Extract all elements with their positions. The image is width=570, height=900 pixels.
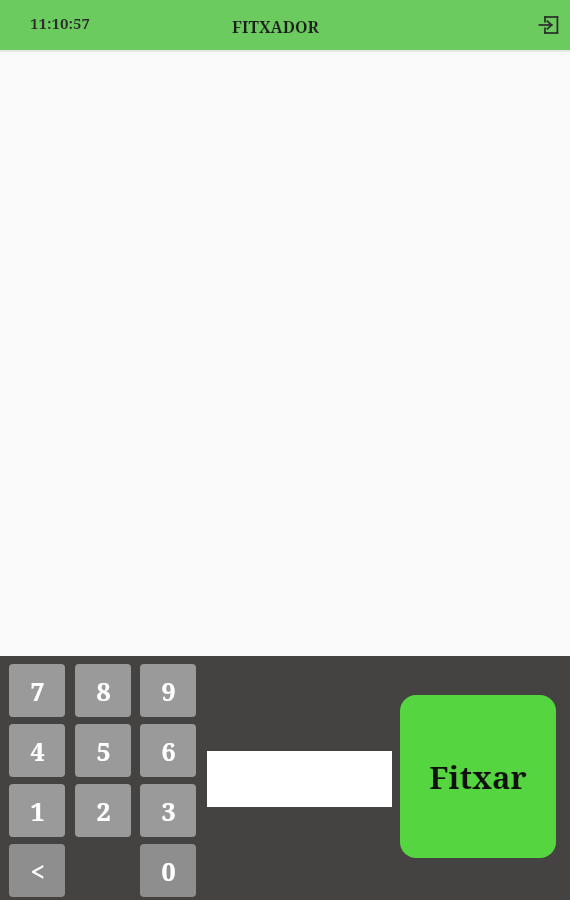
button[interactable]: 3 <box>140 784 196 837</box>
staticText: 0 <box>161 854 176 888</box>
button[interactable]: 0 <box>140 844 196 897</box>
button[interactable]: < <box>9 844 65 897</box>
button[interactable]: 1 <box>9 784 65 837</box>
button[interactable]: 2 <box>75 784 131 837</box>
staticText: 9 <box>161 674 176 708</box>
staticText: 2 <box>96 794 111 828</box>
staticText: < <box>30 854 45 888</box>
staticText: 11:10:57 <box>30 13 90 33</box>
button[interactable]: 6 <box>140 724 196 777</box>
staticText: 4 <box>30 734 45 768</box>
staticText: 5 <box>96 734 111 768</box>
staticText: 6 <box>161 734 176 768</box>
staticText: 8 <box>96 674 111 708</box>
staticText: Fitxar <box>429 756 527 798</box>
button[interactable]: Log out <box>536 12 562 38</box>
button[interactable]: 5 <box>75 724 131 777</box>
button[interactable]: 7 <box>9 664 65 717</box>
button[interactable]: 8 <box>75 664 131 717</box>
staticText: 1 <box>30 794 45 828</box>
button[interactable]: 9 <box>140 664 196 717</box>
button[interactable]: 4 <box>9 724 65 777</box>
button[interactable]: Fitxar <box>400 695 556 858</box>
staticText: 7 <box>30 674 45 708</box>
staticText: FITXADOR <box>232 16 319 38</box>
staticText: 3 <box>161 794 176 828</box>
